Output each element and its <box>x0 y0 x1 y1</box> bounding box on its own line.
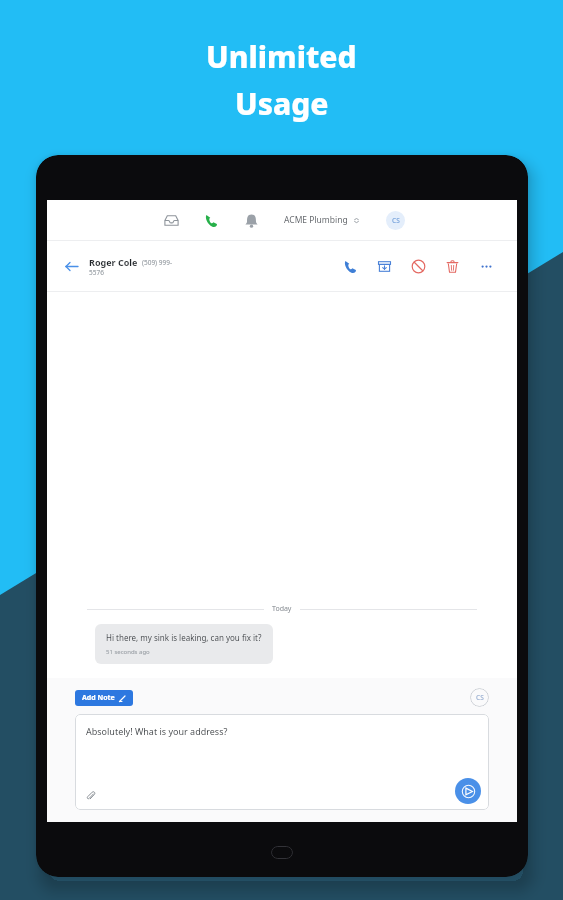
button[interactable]: Archive <box>373 255 395 277</box>
button[interactable]: Block <box>407 255 429 277</box>
button[interactable]: Send <box>455 778 481 804</box>
button[interactable]: Inbox <box>160 209 182 231</box>
staticText: CS <box>392 216 400 225</box>
button[interactable]: CS <box>386 211 405 230</box>
staticText: Unlimited <box>206 36 357 77</box>
staticText: (509) 999- <box>142 258 172 267</box>
button[interactable]: Calls <box>200 209 222 231</box>
staticText: Today <box>272 604 292 614</box>
staticText: Add Note <box>82 693 115 703</box>
staticText: CS <box>476 693 484 702</box>
button[interactable]: Delete <box>441 255 463 277</box>
button[interactable]: Add Note <box>75 690 133 706</box>
button[interactable]: Home <box>271 846 293 859</box>
button[interactable]: Absolutely! What is your address? <box>75 714 489 810</box>
staticText: 5576 <box>89 268 104 277</box>
staticText: Roger Cole <box>89 256 138 268</box>
staticText: 51 seconds ago <box>106 648 150 656</box>
staticText: Usage <box>235 83 329 124</box>
button[interactable]: Hi there, my sink is leaking, can you fi… <box>95 624 273 664</box>
button[interactable]: Notifications <box>240 209 262 231</box>
button[interactable]: Attach file <box>83 788 99 804</box>
staticText: ACME Plumbing <box>284 214 348 226</box>
button[interactable]: Call <box>339 255 361 277</box>
staticText: Absolutely! What is your address? <box>86 725 228 737</box>
button[interactable]: ACME Plumbing <box>284 214 360 226</box>
button[interactable]: Roger Cole <box>89 256 209 277</box>
staticText: Hi there, my sink is leaking, can you fi… <box>106 632 262 643</box>
button[interactable]: CS <box>470 688 489 707</box>
button[interactable]: Back <box>61 256 81 276</box>
button[interactable]: More options <box>475 255 497 277</box>
